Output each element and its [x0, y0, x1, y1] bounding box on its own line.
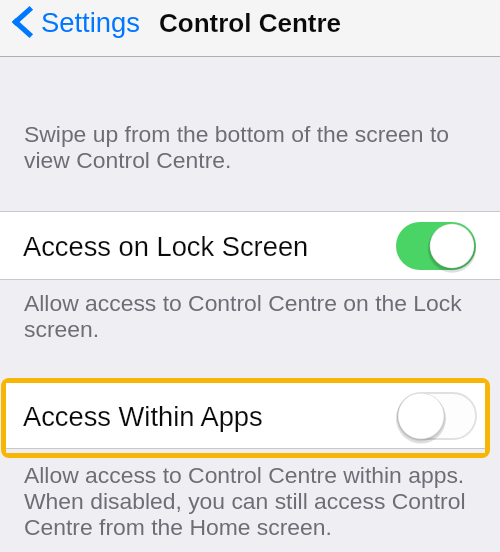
staticText: Allow access to Control Centre within ap… [24, 462, 476, 540]
staticText: Swipe up from the bottom of the screen t… [24, 121, 455, 173]
staticText: Access Within Apps [23, 401, 263, 431]
button[interactable]: Switch on [396, 222, 476, 270]
button[interactable]: Switch off [397, 392, 477, 440]
button[interactable]: Access Within Apps [6, 383, 485, 448]
other: Back [13, 7, 32, 37]
staticText: Control Centre [159, 8, 341, 37]
staticText: Allow access to Control Centre on the Lo… [24, 290, 468, 342]
button[interactable]: Access on Lock Screen [0, 212, 500, 279]
staticText: Settings [41, 7, 140, 38]
button[interactable]: Back to Settings [0, 0, 148, 44]
staticText: Access on Lock Screen [23, 231, 309, 261]
